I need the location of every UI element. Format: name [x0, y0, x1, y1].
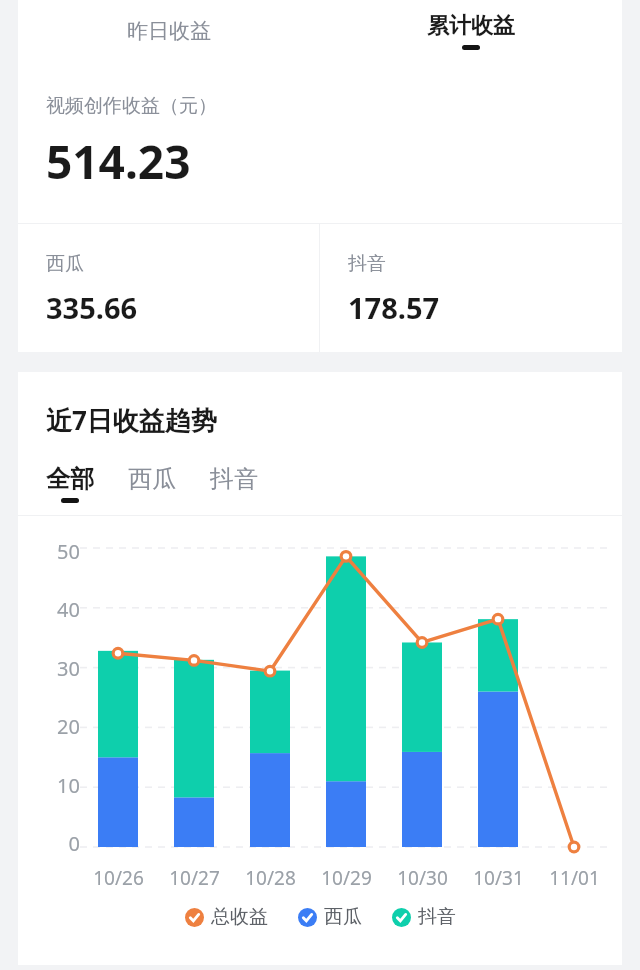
button[interactable]: 西瓜 — [298, 905, 362, 929]
staticText: 10/31 — [473, 865, 524, 891]
button[interactable]: 抖音 — [320, 224, 622, 352]
staticText: 西瓜 — [46, 252, 84, 276]
staticText: 20 — [57, 713, 80, 740]
staticText: 10/28 — [245, 865, 296, 891]
staticText: 全部 — [46, 464, 94, 494]
staticText: 近7日收益趋势 — [46, 402, 217, 438]
staticText: 335.66 — [46, 288, 138, 327]
staticText: 10 — [57, 772, 80, 799]
staticText: 西瓜 — [324, 905, 362, 929]
staticText: 50 — [57, 538, 80, 565]
staticText: 10/30 — [397, 865, 448, 891]
staticText: 10/29 — [321, 865, 372, 891]
button[interactable]: 全部 — [46, 464, 94, 503]
staticText: 10/27 — [169, 865, 220, 891]
button[interactable]: 累计收益 — [320, 0, 622, 62]
staticText: 10/26 — [93, 865, 144, 891]
button[interactable]: 总收益 — [185, 905, 268, 929]
staticText: 40 — [57, 596, 80, 623]
staticText: 累计收益 — [427, 12, 515, 40]
staticText: 昨日收益 — [127, 18, 211, 44]
button[interactable]: 西瓜 — [128, 464, 176, 503]
staticText: 抖音 — [348, 252, 386, 276]
button[interactable]: 抖音 — [210, 464, 258, 503]
button[interactable]: 西瓜 — [18, 224, 319, 352]
staticText: 视频创作收益（元） — [46, 94, 217, 118]
staticText: 抖音 — [210, 464, 258, 494]
staticText: 0 — [68, 830, 80, 857]
staticText: 总收益 — [211, 905, 268, 929]
button[interactable]: 昨日收益 — [18, 0, 320, 62]
staticText: 西瓜 — [128, 464, 176, 494]
staticText: 抖音 — [418, 905, 456, 929]
staticText: 30 — [57, 655, 80, 682]
staticText: 178.57 — [348, 288, 440, 327]
staticText: 11/01 — [549, 865, 600, 891]
staticText: 514.23 — [46, 130, 191, 193]
button[interactable]: 抖音 — [392, 905, 456, 929]
